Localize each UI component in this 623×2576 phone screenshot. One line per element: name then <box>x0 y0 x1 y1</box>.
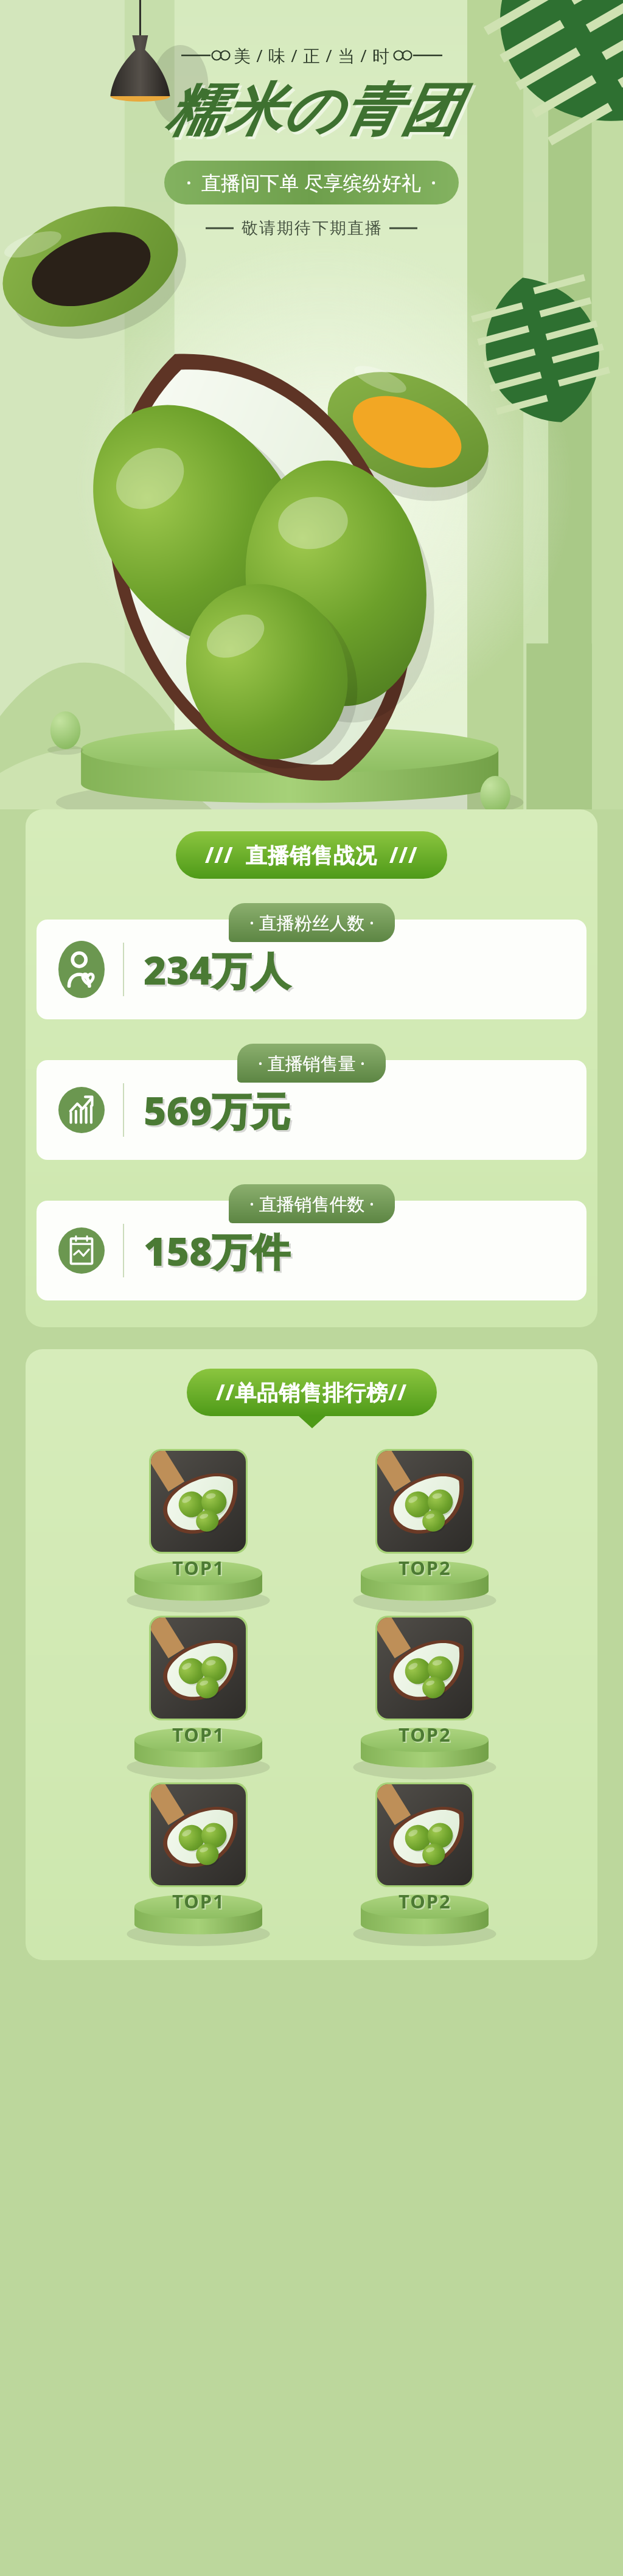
staticText: TOP2 <box>400 1556 453 1582</box>
staticText: TOP1 <box>172 1888 225 1914</box>
button[interactable]: TOP2 <box>361 1447 489 1600</box>
staticText: TOP2 <box>399 1888 451 1914</box>
button[interactable]: · 直播销售件数 · <box>229 1184 395 1223</box>
staticText: TOP2 <box>399 1722 451 1747</box>
staticText: 糯米の青团 <box>167 77 461 148</box>
button[interactable]: TOP1 <box>134 1613 262 1767</box>
staticText: 美 / 味 / 正 / 当 / 时 <box>234 44 390 67</box>
staticText: 158万件 <box>144 1224 290 1277</box>
staticText: · 直播销售件数 · <box>249 1192 374 1216</box>
staticText: TOP2 <box>399 1555 451 1580</box>
staticText: · 直播销售量 · <box>258 1051 365 1075</box>
staticText: 敬请期待下期直播 <box>241 218 382 239</box>
staticText: 569万元 <box>144 1084 290 1137</box>
button[interactable]: · 直播销售件数 · <box>37 1201 586 1300</box>
staticText: · 直播粉丝人数 · <box>249 910 374 935</box>
staticText: · 直播间下单 尽享缤纷好礼 · <box>186 169 437 196</box>
staticText: 569万元 <box>145 1086 292 1139</box>
button[interactable]: · 直播销售量 · <box>237 1044 386 1083</box>
button[interactable]: TOP2 <box>361 1780 489 1933</box>
staticText: TOP1 <box>173 1723 226 1748</box>
staticText: TOP1 <box>173 1890 226 1915</box>
button[interactable]: TOP1 <box>134 1780 262 1933</box>
other: · 直播粉丝人数 · <box>58 941 105 998</box>
button[interactable]: · 直播销售量 · <box>37 1060 586 1160</box>
other: · 直播销售量 · <box>58 1081 105 1139</box>
button[interactable]: //单品销售排行榜// <box>187 1369 437 1416</box>
staticText: 234万人 <box>144 943 290 996</box>
button[interactable]: · 直播间下单 尽享缤纷好礼 · <box>164 161 459 204</box>
button[interactable]: · 直播粉丝人数 · <box>37 920 586 1019</box>
staticText: TOP1 <box>173 1556 226 1582</box>
staticText: //单品销售排行榜// <box>216 1378 408 1407</box>
button[interactable]: TOP1 <box>134 1447 262 1600</box>
other: · 直播销售件数 · <box>58 1222 105 1279</box>
staticText: 234万人 <box>145 945 292 998</box>
staticText: 158万件 <box>145 1226 292 1279</box>
staticText: /// 直播销售战况 /// <box>205 840 418 870</box>
button[interactable]: /// 直播销售战况 /// <box>176 831 447 879</box>
staticText: TOP1 <box>172 1555 225 1580</box>
staticText: TOP2 <box>400 1890 453 1915</box>
button[interactable]: TOP2 <box>361 1613 489 1767</box>
staticText: TOP2 <box>400 1723 453 1748</box>
staticText: TOP1 <box>172 1722 225 1747</box>
staticText: 糯米の青团 <box>165 74 459 146</box>
button[interactable]: · 直播粉丝人数 · <box>229 903 395 942</box>
